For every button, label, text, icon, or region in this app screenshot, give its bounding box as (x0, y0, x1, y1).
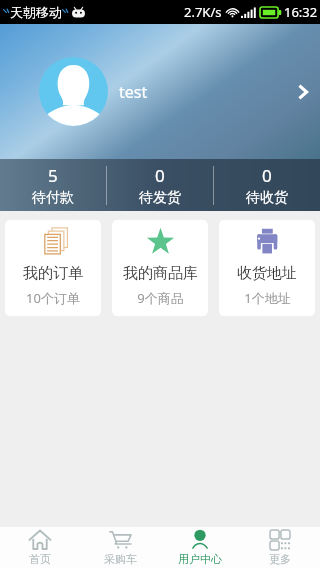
button[interactable]: 0 (214, 159, 320, 211)
staticText: 2.7K/s (184, 3, 222, 21)
staticText: 1个地址 (244, 289, 291, 307)
button[interactable]: 我的商品库 (112, 220, 208, 316)
staticText: 9个商品 (137, 289, 184, 307)
staticText: 0 (262, 164, 272, 187)
staticText: test (119, 81, 148, 103)
button[interactable]: 用户中心 (160, 527, 240, 568)
staticText: 天朝移动 (10, 4, 62, 20)
button[interactable]: 我的订单 (5, 220, 101, 316)
button[interactable]: 收货地址 (219, 220, 315, 316)
staticText: 待付款 (32, 189, 74, 207)
staticText: 待发货 (139, 189, 181, 207)
staticText: 16:32 (284, 3, 318, 21)
staticText: 我的订单 (23, 264, 83, 283)
button[interactable]: 更多 (240, 527, 320, 568)
staticText: 0 (155, 164, 165, 187)
button[interactable]: 5 (0, 159, 106, 211)
staticText: 用户中心 (178, 552, 222, 566)
staticText: 收货地址 (237, 264, 297, 283)
staticText: 5 (48, 164, 58, 187)
staticText: 我的商品库 (123, 264, 198, 283)
button[interactable]: 0 (107, 159, 213, 211)
staticText: 首页 (29, 552, 51, 566)
button[interactable]: 采购车 (80, 527, 160, 568)
staticText: 10个订单 (26, 289, 80, 307)
other: More (297, 84, 309, 100)
button[interactable]: 首页 (0, 527, 80, 568)
staticText: 更多 (269, 552, 291, 566)
button[interactable]: test (0, 24, 320, 159)
staticText: 待收货 (246, 189, 288, 207)
staticText: 采购车 (104, 552, 137, 566)
